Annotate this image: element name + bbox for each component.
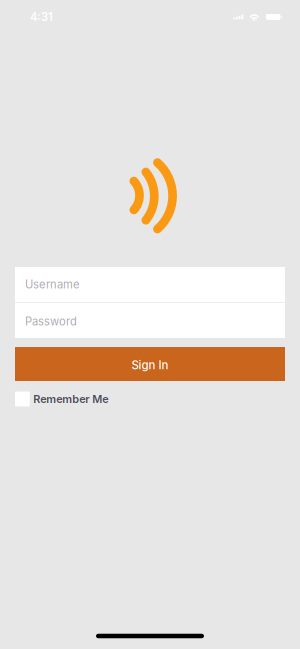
staticText: Password	[25, 315, 77, 328]
button[interactable]: Password	[15, 303, 285, 338]
button[interactable]: Sign In	[15, 347, 285, 381]
button[interactable]: Username	[15, 267, 285, 302]
staticText: Remember Me	[33, 392, 108, 406]
staticText: Sign In	[131, 358, 168, 372]
staticText: Username	[25, 278, 80, 291]
staticText: 4:31	[30, 10, 53, 24]
button[interactable]: Remember Me	[15, 389, 285, 409]
